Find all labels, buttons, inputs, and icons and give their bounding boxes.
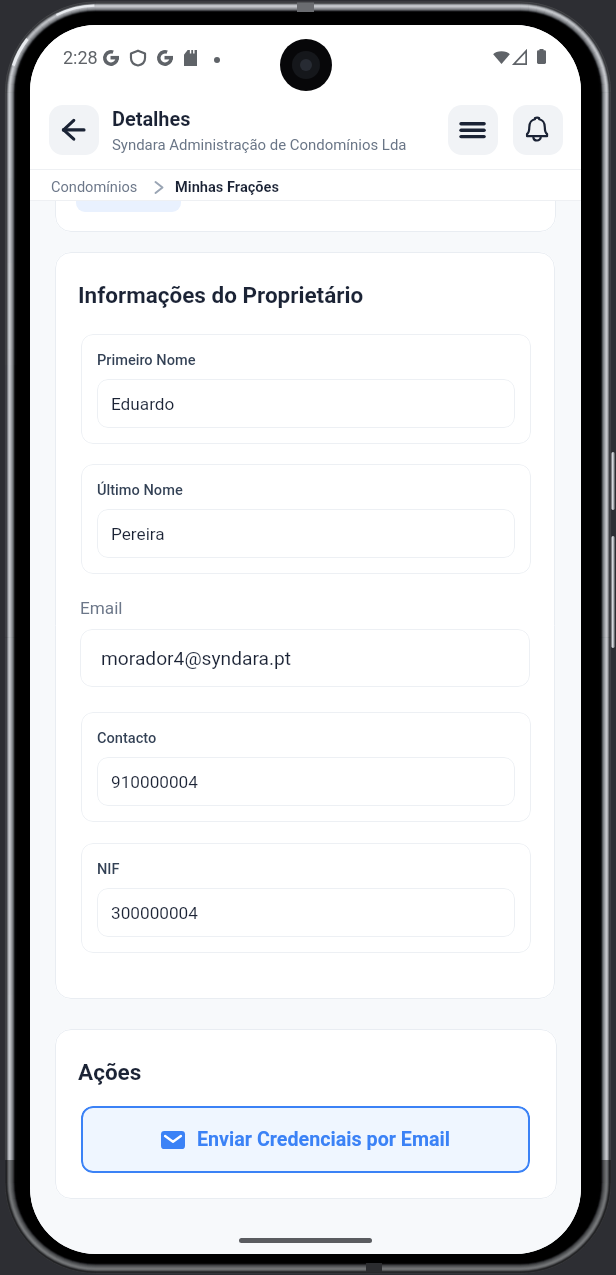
button[interactable]: Back [49, 105, 99, 155]
staticText: Email [80, 598, 123, 618]
staticText: morador4@syndara.pt [101, 647, 292, 670]
button[interactable]: Notifications [513, 105, 563, 155]
staticText: Pereira [111, 524, 165, 544]
staticText: Syndara Administração de Condomínios Lda [112, 136, 407, 154]
staticText: 910000004 [111, 772, 198, 792]
staticText: Primeiro Nome [97, 351, 196, 368]
button[interactable]: Pereira [97, 509, 515, 558]
staticText: Eduardo [111, 394, 175, 414]
staticText: Ações [78, 1059, 142, 1085]
button[interactable]: 910000004 [97, 757, 515, 806]
staticText: Detalhes [112, 108, 191, 131]
staticText: 300000004 [111, 903, 198, 923]
staticText: Informações do Proprietário [78, 282, 364, 308]
button[interactable]: Enviar Credenciais por Email [81, 1106, 530, 1173]
button[interactable]: 300000004 [97, 888, 515, 937]
button[interactable]: Menu [448, 105, 498, 155]
button[interactable]: Minhas Frações [175, 178, 279, 195]
staticText: NIF [97, 860, 120, 877]
button[interactable]: morador4@syndara.pt [80, 629, 530, 687]
staticText: 2:28 [63, 47, 98, 68]
staticText: Enviar Credenciais por Email [197, 1128, 450, 1151]
staticText: Contacto [97, 729, 157, 746]
button[interactable]: Condomínios [51, 178, 138, 195]
button[interactable]: Eduardo [97, 379, 515, 428]
staticText: Último Nome [97, 481, 183, 498]
